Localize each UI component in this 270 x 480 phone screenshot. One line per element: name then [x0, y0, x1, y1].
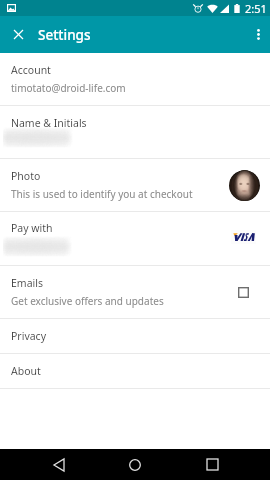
button[interactable]: Recents — [194, 449, 230, 480]
button[interactable]: Photo — [0, 159, 270, 211]
staticText: Settings — [38, 26, 91, 44]
button[interactable]: About — [0, 354, 270, 388]
button[interactable]: Home — [117, 449, 153, 480]
button[interactable]: Name & Initials — [0, 106, 270, 158]
staticText: Pay with — [11, 221, 53, 235]
button[interactable]: Account — [0, 53, 270, 105]
staticText: This is used to identify you at checkout — [11, 187, 193, 201]
button[interactable]: More options — [246, 16, 270, 53]
staticText: About — [11, 364, 41, 378]
staticText: Privacy — [11, 329, 47, 343]
staticText: 2:51 — [245, 1, 267, 16]
button[interactable]: Back — [41, 449, 77, 480]
button[interactable]: Close — [0, 16, 37, 53]
staticText: Photo — [11, 169, 41, 183]
staticText: Account — [11, 63, 51, 77]
button[interactable]: Pay with — [0, 212, 270, 265]
staticText: timotato@droid-life.com — [11, 81, 126, 95]
staticText: Get exclusive offers and updates — [11, 294, 164, 308]
staticText: Name & Initials — [11, 116, 87, 130]
button[interactable]: Privacy — [0, 319, 270, 353]
button[interactable]: Emails — [0, 266, 270, 318]
staticText: Emails — [11, 276, 43, 290]
